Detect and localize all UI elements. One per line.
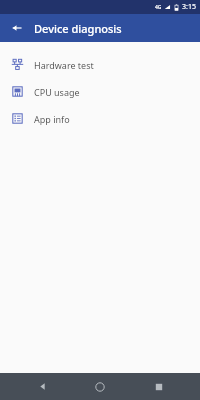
button[interactable]: CPU usage [0, 78, 200, 105]
button[interactable]: Hardware test [0, 51, 200, 78]
button[interactable]: Recent apps [142, 373, 176, 400]
staticText: App info [34, 113, 70, 125]
button[interactable]: Home [83, 373, 117, 400]
staticText: 3:15 [182, 2, 196, 12]
staticText: CPU usage [34, 86, 80, 98]
button[interactable]: App info [0, 105, 200, 132]
staticText: Device diagnosis [34, 21, 122, 36]
button[interactable]: Back [25, 373, 59, 400]
staticText: 4G [155, 4, 162, 11]
staticText: Hardware test [34, 59, 94, 71]
button[interactable]: Back [5, 16, 29, 40]
